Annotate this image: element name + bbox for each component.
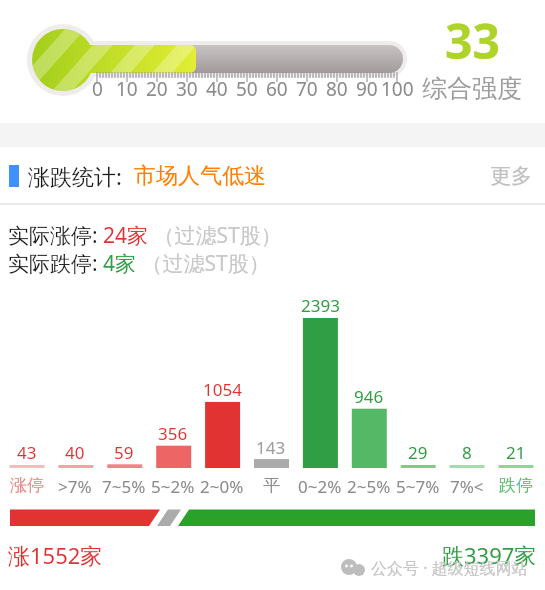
staticText: 综合强度 [422, 73, 522, 104]
staticText: 0 [92, 76, 103, 102]
staticText: 8 [462, 441, 472, 464]
staticText: 80 [326, 76, 348, 102]
staticText: 30 [176, 76, 198, 102]
staticText: 涨1552家 [8, 540, 103, 570]
staticText: 2~5% [347, 475, 391, 498]
staticText: 29 [408, 441, 428, 464]
staticText: 356 [158, 422, 188, 445]
staticText: 143 [256, 436, 286, 459]
staticText: 实际跌停: 4家 （过滤ST股） [8, 249, 270, 278]
staticText: 跌停 [499, 475, 533, 496]
staticText: 59 [114, 441, 134, 464]
staticText: 40 [65, 441, 85, 464]
staticText: 60 [266, 76, 288, 102]
staticText: 5~2% [151, 475, 195, 498]
staticText: 10 [116, 76, 138, 102]
staticText: 涨停 [10, 475, 44, 496]
staticText: 43 [17, 441, 37, 464]
staticText: 1054 [203, 378, 242, 401]
staticText: 更多 [490, 163, 532, 189]
staticText: 公众号 · 超级短线网站 [371, 557, 528, 579]
staticText: >7% [58, 475, 92, 498]
staticText: 20 [146, 76, 168, 102]
staticText: 实际涨停: 24家 （过滤ST股） [8, 221, 282, 250]
staticText: 33 [445, 8, 500, 73]
staticText: 市场人气低迷 [134, 162, 266, 190]
staticText: 7~5% [102, 475, 146, 498]
staticText: 跌3397家 [442, 540, 537, 570]
staticText: 涨跌统计: [28, 161, 122, 191]
button[interactable]: 涨跌统计: [0, 152, 545, 200]
staticText: 50 [236, 76, 258, 102]
staticText: 40 [206, 76, 228, 102]
staticText: 100 [381, 76, 414, 102]
staticText: 90 [356, 76, 378, 102]
staticText: 7%< [450, 475, 484, 498]
staticText: 2~0% [200, 475, 244, 498]
staticText: 0~2% [298, 475, 342, 498]
staticText: 平 [263, 475, 280, 496]
staticText: 70 [296, 76, 318, 102]
staticText: 946 [354, 385, 384, 408]
staticText: 5~7% [396, 475, 440, 498]
staticText: 21 [506, 441, 526, 464]
staticText: 2393 [301, 294, 340, 317]
